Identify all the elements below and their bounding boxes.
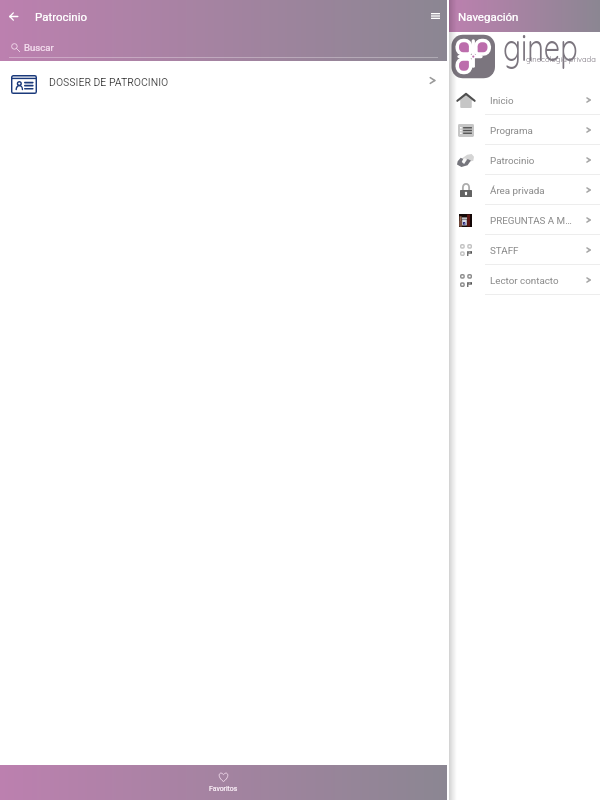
staticText: Navegación: [458, 10, 519, 23]
staticText: DOSSIER DE PATROCINIO: [49, 76, 169, 88]
button[interactable]: Inicio: [449, 85, 600, 115]
staticText: STAFF: [490, 245, 586, 256]
staticText: Inicio: [490, 95, 586, 106]
button[interactable]: PREGUNTAS A M…: [449, 205, 600, 235]
staticText: PREGUNTAS A M…: [490, 215, 586, 226]
staticText: Área privada: [490, 185, 586, 196]
staticText: Patrocinio: [490, 155, 586, 166]
button[interactable]: Área privada: [449, 175, 600, 205]
button[interactable]: Favoritos: [187, 769, 260, 796]
button[interactable]: STAFF: [449, 235, 600, 265]
button[interactable]: Patrocinio: [449, 145, 600, 175]
staticText: ginecologia privada: [526, 54, 596, 63]
staticText: Buscar: [24, 42, 54, 53]
button[interactable]: DOSSIER DE PATROCINIO: [0, 61, 447, 100]
staticText: Programa: [490, 125, 586, 136]
button[interactable]: Programa: [449, 115, 600, 145]
button[interactable]: Lector contacto: [449, 265, 600, 295]
button[interactable]: Menu: [424, 0, 447, 32]
staticText: Lector contacto: [490, 275, 586, 286]
button[interactable]: Back: [0, 0, 25, 32]
staticText: Favoritos: [209, 785, 238, 793]
staticText: ginep: [503, 22, 578, 70]
staticText: Patrocinio: [35, 10, 88, 23]
